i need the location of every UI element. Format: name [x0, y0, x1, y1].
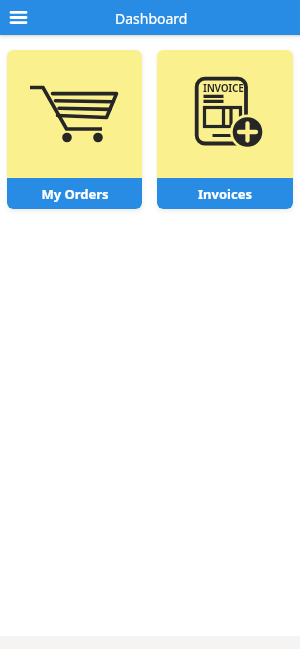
button[interactable]: My Orders [7, 50, 142, 209]
staticText: INVOICE [203, 81, 244, 95]
staticText: Dashboard [115, 9, 188, 28]
button[interactable]: Menu [4, 3, 32, 31]
button[interactable]: INVOICE [157, 50, 293, 209]
staticText: My Orders [41, 185, 109, 203]
staticText: Invoices [198, 185, 252, 203]
